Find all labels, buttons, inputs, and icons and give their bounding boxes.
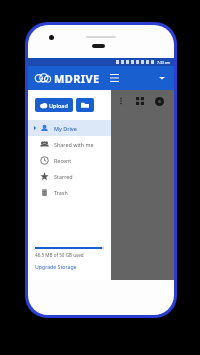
button[interactable]: Shared with me [28, 136, 111, 152]
button[interactable]: Open navigation menu [108, 72, 120, 84]
staticText: Shared with me [54, 141, 94, 148]
button[interactable]: Trash [28, 184, 111, 200]
staticText: Upload [49, 102, 68, 109]
staticText: 7:33 am [157, 60, 171, 65]
button[interactable]: Upgrade Storage [35, 263, 77, 270]
button[interactable]: Account options [156, 72, 168, 84]
staticText: MDRIVE [54, 71, 100, 86]
button[interactable]: Settings [152, 94, 166, 108]
staticText: Trash [54, 189, 68, 196]
button[interactable] [48, 122, 96, 176]
button[interactable]: Upload [40, 98, 68, 112]
button[interactable]: More options [114, 94, 128, 108]
button[interactable]: New folder [76, 98, 94, 112]
button[interactable]: My Drive [28, 120, 111, 136]
staticText: Upgrade Storage [35, 263, 77, 270]
button[interactable]: Starred [28, 168, 111, 184]
staticText: Recent [54, 157, 72, 164]
staticText: 46.5 MB of 50 GB used [35, 252, 84, 258]
button[interactable]: Grid view [133, 94, 147, 108]
staticText: Starred [54, 173, 73, 180]
staticText: My Drive [54, 125, 77, 132]
button[interactable]: Recent [28, 152, 111, 168]
